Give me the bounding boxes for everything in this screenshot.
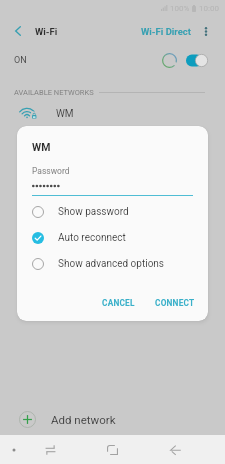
button[interactable]: Wi-Fi Direct xyxy=(136,16,196,46)
staticText: 100% xyxy=(170,4,190,13)
button[interactable]: Show password xyxy=(17,199,208,225)
staticText: Show advanced options xyxy=(58,258,165,270)
staticText: Password xyxy=(32,166,70,176)
staticText: CANCEL xyxy=(102,298,135,308)
staticText: ON xyxy=(14,55,27,66)
button[interactable]: Navigate up xyxy=(3,16,33,46)
staticText: WM xyxy=(32,141,51,153)
staticText: Wi-Fi Direct xyxy=(141,26,192,37)
staticText: CONNECT xyxy=(155,298,195,308)
button[interactable]: Turn Wi-Fi on or off xyxy=(181,46,225,74)
button[interactable]: WM xyxy=(0,102,225,126)
button[interactable]: Add network xyxy=(0,406,225,433)
button[interactable]: Recent apps xyxy=(33,435,67,464)
button[interactable]: Home xyxy=(95,435,129,464)
staticText: WM xyxy=(56,108,74,120)
button[interactable]: Show advanced options xyxy=(17,251,208,277)
staticText: Wi-Fi xyxy=(35,26,58,37)
staticText: Add network xyxy=(51,413,116,426)
button[interactable]: Auto reconnect xyxy=(17,225,208,251)
button[interactable]: More options xyxy=(193,18,219,44)
staticText: Auto reconnect xyxy=(58,232,126,244)
staticText: Show password xyxy=(58,206,129,218)
button[interactable]: Hide navigation bar xyxy=(4,440,24,460)
staticText: AVAILABLE NETWORKS xyxy=(14,88,94,97)
button[interactable]: CONNECT xyxy=(151,293,199,313)
button[interactable]: Back xyxy=(158,435,192,464)
button[interactable]: CANCEL xyxy=(98,293,139,313)
staticText: 10:00 xyxy=(199,4,219,13)
